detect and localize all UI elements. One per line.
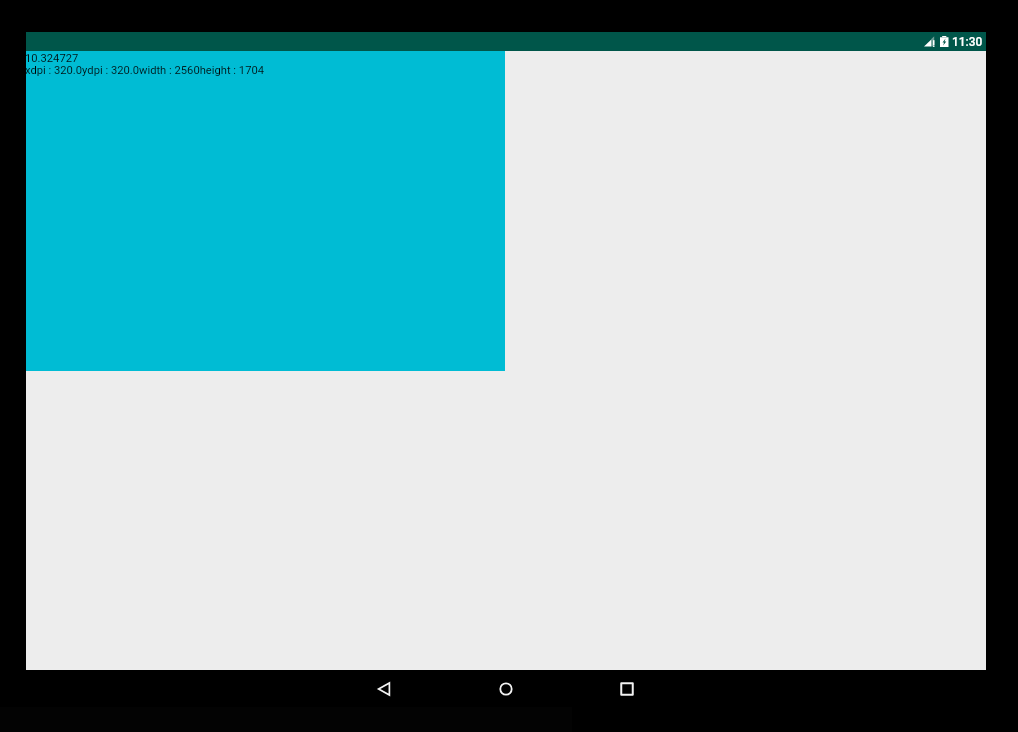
button[interactable]: Home [446, 669, 566, 709]
button[interactable]: Back [324, 669, 444, 709]
staticText: 11:30 [952, 35, 983, 49]
staticText: xdpi : 320.0ydpi : 320.0width : 2560heig… [26, 64, 265, 77]
staticText: 10.324727 [26, 52, 79, 65]
button[interactable]: 10.324727 [26, 51, 505, 371]
button[interactable]: Recents [567, 669, 687, 709]
